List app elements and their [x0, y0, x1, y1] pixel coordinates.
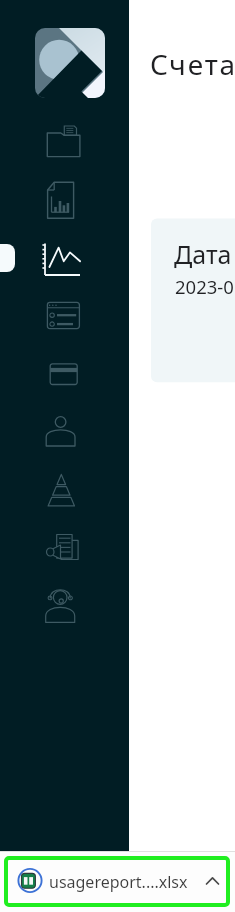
- staticText: 2023-01-31: [175, 274, 235, 299]
- staticText: usagereport....xlsx: [49, 871, 188, 893]
- staticText: Дата: [174, 237, 232, 271]
- staticText: Счета: [150, 45, 235, 83]
